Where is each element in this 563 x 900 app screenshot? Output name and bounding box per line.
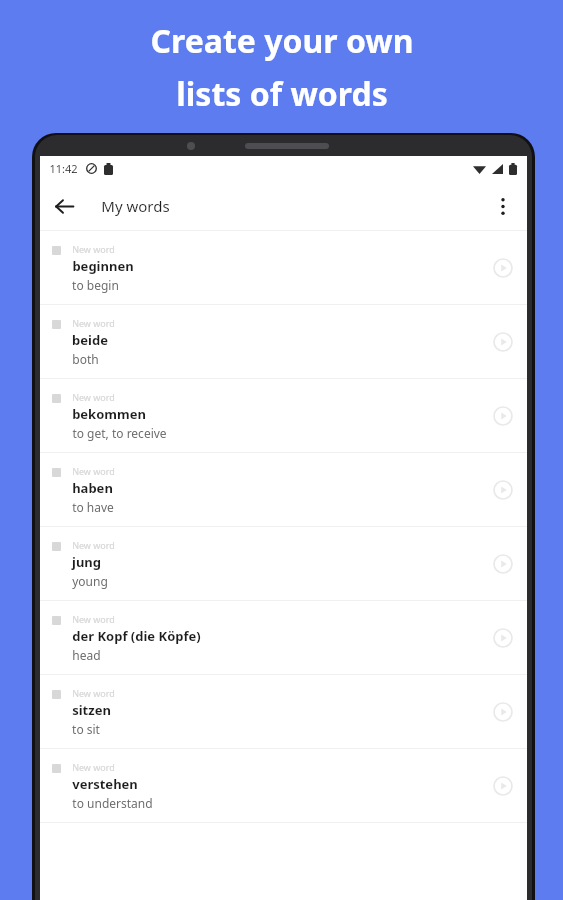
- staticText: haben: [72, 479, 113, 497]
- button[interactable]: Play pronunciation: [482, 543, 524, 585]
- staticText: to get, to receive: [72, 425, 167, 441]
- staticText: to begin: [72, 277, 119, 293]
- staticText: New word: [72, 687, 115, 699]
- staticText: lists of words: [176, 72, 388, 116]
- button[interactable]: New word: [40, 749, 527, 822]
- button[interactable]: New word: [40, 601, 527, 674]
- button[interactable]: Play pronunciation: [482, 617, 524, 659]
- staticText: New word: [72, 465, 115, 477]
- staticText: jung: [72, 553, 101, 571]
- staticText: young: [72, 573, 108, 589]
- button[interactable]: Play pronunciation: [482, 765, 524, 807]
- staticText: New word: [72, 761, 115, 773]
- staticText: to sit: [72, 721, 100, 737]
- button[interactable]: Play pronunciation: [482, 395, 524, 437]
- button[interactable]: More options: [479, 182, 527, 230]
- button[interactable]: New word: [40, 231, 527, 304]
- staticText: beginnen: [72, 257, 134, 275]
- staticText: der Kopf (die Köpfe): [72, 627, 201, 645]
- button[interactable]: Play pronunciation: [482, 469, 524, 511]
- staticText: New word: [72, 317, 115, 329]
- staticText: New word: [72, 243, 115, 255]
- staticText: verstehen: [72, 775, 138, 793]
- staticText: New word: [72, 613, 115, 625]
- button[interactable]: New word: [40, 527, 527, 600]
- staticText: New word: [72, 539, 115, 551]
- button[interactable]: Back: [40, 182, 88, 230]
- staticText: New word: [72, 391, 115, 403]
- staticText: to understand: [72, 795, 153, 811]
- staticText: head: [72, 647, 101, 663]
- button[interactable]: New word: [40, 453, 527, 526]
- button[interactable]: New word: [40, 675, 527, 748]
- button[interactable]: Play pronunciation: [482, 691, 524, 733]
- staticText: both: [72, 351, 99, 367]
- staticText: to have: [72, 499, 114, 515]
- button[interactable]: New word: [40, 379, 527, 452]
- staticText: sitzen: [72, 701, 111, 719]
- staticText: My words: [101, 196, 170, 216]
- button[interactable]: New word: [40, 305, 527, 378]
- staticText: 11:42: [49, 161, 78, 176]
- staticText: bekommen: [72, 405, 146, 423]
- staticText: Create your own: [150, 19, 414, 63]
- button[interactable]: Play pronunciation: [482, 247, 524, 289]
- button[interactable]: Play pronunciation: [482, 321, 524, 363]
- staticText: beide: [72, 331, 108, 349]
